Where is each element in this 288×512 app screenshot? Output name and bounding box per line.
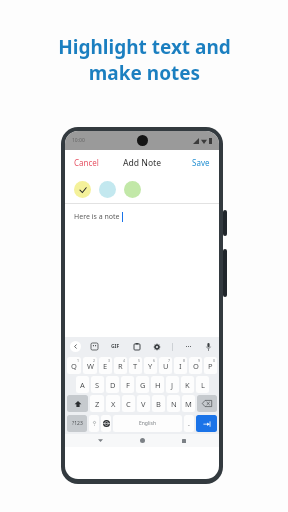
staticText: Highlight text and make notes <box>58 34 231 85</box>
staticText: S <box>95 380 100 390</box>
button[interactable]: Period <box>184 415 194 432</box>
staticText: A <box>80 380 85 390</box>
staticText: English <box>139 420 157 427</box>
staticText: F <box>126 380 130 390</box>
staticText: Add Note <box>123 157 162 169</box>
button[interactable]: Switch language <box>101 415 111 432</box>
staticText: U <box>163 361 169 371</box>
button[interactable]: C <box>122 395 135 412</box>
button[interactable]: Here is a note <box>65 204 219 337</box>
button[interactable]: P <box>204 357 217 374</box>
staticText: M <box>185 399 192 409</box>
staticText: 0 <box>213 358 216 363</box>
staticText: W <box>87 361 94 371</box>
button[interactable]: Blue highlight <box>99 181 116 198</box>
staticText: ?123 <box>72 420 83 427</box>
staticText: I <box>179 361 182 371</box>
button[interactable]: N <box>167 395 180 412</box>
button[interactable]: Backspace <box>197 395 217 412</box>
staticText: J <box>171 380 174 390</box>
button[interactable]: Recent apps <box>177 434 190 447</box>
staticText: 2 <box>93 358 96 363</box>
staticText: . <box>188 419 190 429</box>
staticText: 4 <box>123 358 126 363</box>
staticText: C <box>126 399 131 409</box>
button[interactable]: Green highlight <box>124 181 141 198</box>
button[interactable]: E <box>99 357 112 374</box>
staticText: T <box>133 361 138 371</box>
button[interactable]: F <box>121 376 134 393</box>
button[interactable]: I <box>174 357 187 374</box>
staticText: V <box>141 399 146 409</box>
staticText: H <box>155 380 161 390</box>
button[interactable]: Cancel <box>65 153 108 172</box>
button[interactable]: K <box>181 376 194 393</box>
staticText: 10:00 <box>72 137 85 144</box>
button[interactable]: Y <box>144 357 157 374</box>
staticText: 7 <box>168 358 171 363</box>
staticText: Q <box>71 361 77 371</box>
button[interactable]: M <box>182 395 195 412</box>
staticText: Z <box>95 399 100 409</box>
button[interactable]: Enter <box>196 415 217 432</box>
staticText: 6 <box>153 358 156 363</box>
staticText: 9 <box>198 358 201 363</box>
button[interactable]: V <box>137 395 150 412</box>
staticText: E <box>103 361 108 371</box>
staticText: G <box>140 380 146 390</box>
staticText: P <box>208 361 213 371</box>
button[interactable]: U <box>159 357 172 374</box>
staticText: Here is a note <box>74 212 120 222</box>
staticText: 8 <box>183 358 186 363</box>
button[interactable]: T <box>129 357 142 374</box>
button[interactable]: ?123 <box>67 415 87 432</box>
staticText: 5 <box>138 358 141 363</box>
button[interactable]: A <box>76 376 89 393</box>
button[interactable]: B <box>152 395 165 412</box>
button[interactable]: Shift <box>67 395 88 412</box>
staticText: Y <box>148 361 153 371</box>
staticText: L <box>201 380 205 390</box>
button[interactable]: R <box>114 357 127 374</box>
button[interactable]: Q <box>67 357 81 374</box>
button[interactable]: Yellow highlight selected <box>74 181 91 198</box>
button[interactable]: X <box>106 395 120 412</box>
button[interactable]: Clipboard <box>131 341 142 352</box>
button[interactable]: H <box>151 376 164 393</box>
button[interactable]: J <box>166 376 179 393</box>
staticText: K <box>185 380 190 390</box>
button[interactable]: Voice input <box>203 341 214 352</box>
button[interactable]: More options <box>183 341 194 352</box>
staticText: D <box>110 380 116 390</box>
button[interactable]: S <box>91 376 104 393</box>
button[interactable]: O <box>189 357 202 374</box>
staticText: N <box>171 399 177 409</box>
staticText: GIF <box>111 343 120 350</box>
button[interactable]: Back <box>70 341 81 352</box>
button[interactable]: Comma <box>89 415 99 432</box>
staticText: Save <box>192 157 210 168</box>
button[interactable]: GIF <box>109 341 122 352</box>
button[interactable]: G <box>136 376 149 393</box>
button[interactable]: Settings <box>151 341 162 352</box>
staticText: B <box>156 399 161 409</box>
button[interactable]: Back <box>94 434 107 447</box>
staticText: 1 <box>77 358 80 363</box>
button[interactable]: Z <box>90 395 104 412</box>
staticText: 3 <box>108 358 111 363</box>
button[interactable]: Stickers <box>89 341 100 352</box>
staticText: R <box>118 361 123 371</box>
button[interactable]: D <box>106 376 119 393</box>
button[interactable]: English <box>113 415 182 432</box>
staticText: X <box>111 399 116 409</box>
staticText: Cancel <box>74 157 99 168</box>
button[interactable]: Save <box>183 153 219 172</box>
button[interactable]: W <box>83 357 97 374</box>
staticText: O <box>193 361 199 371</box>
button[interactable]: Home <box>136 434 149 447</box>
button[interactable]: L <box>196 376 209 393</box>
